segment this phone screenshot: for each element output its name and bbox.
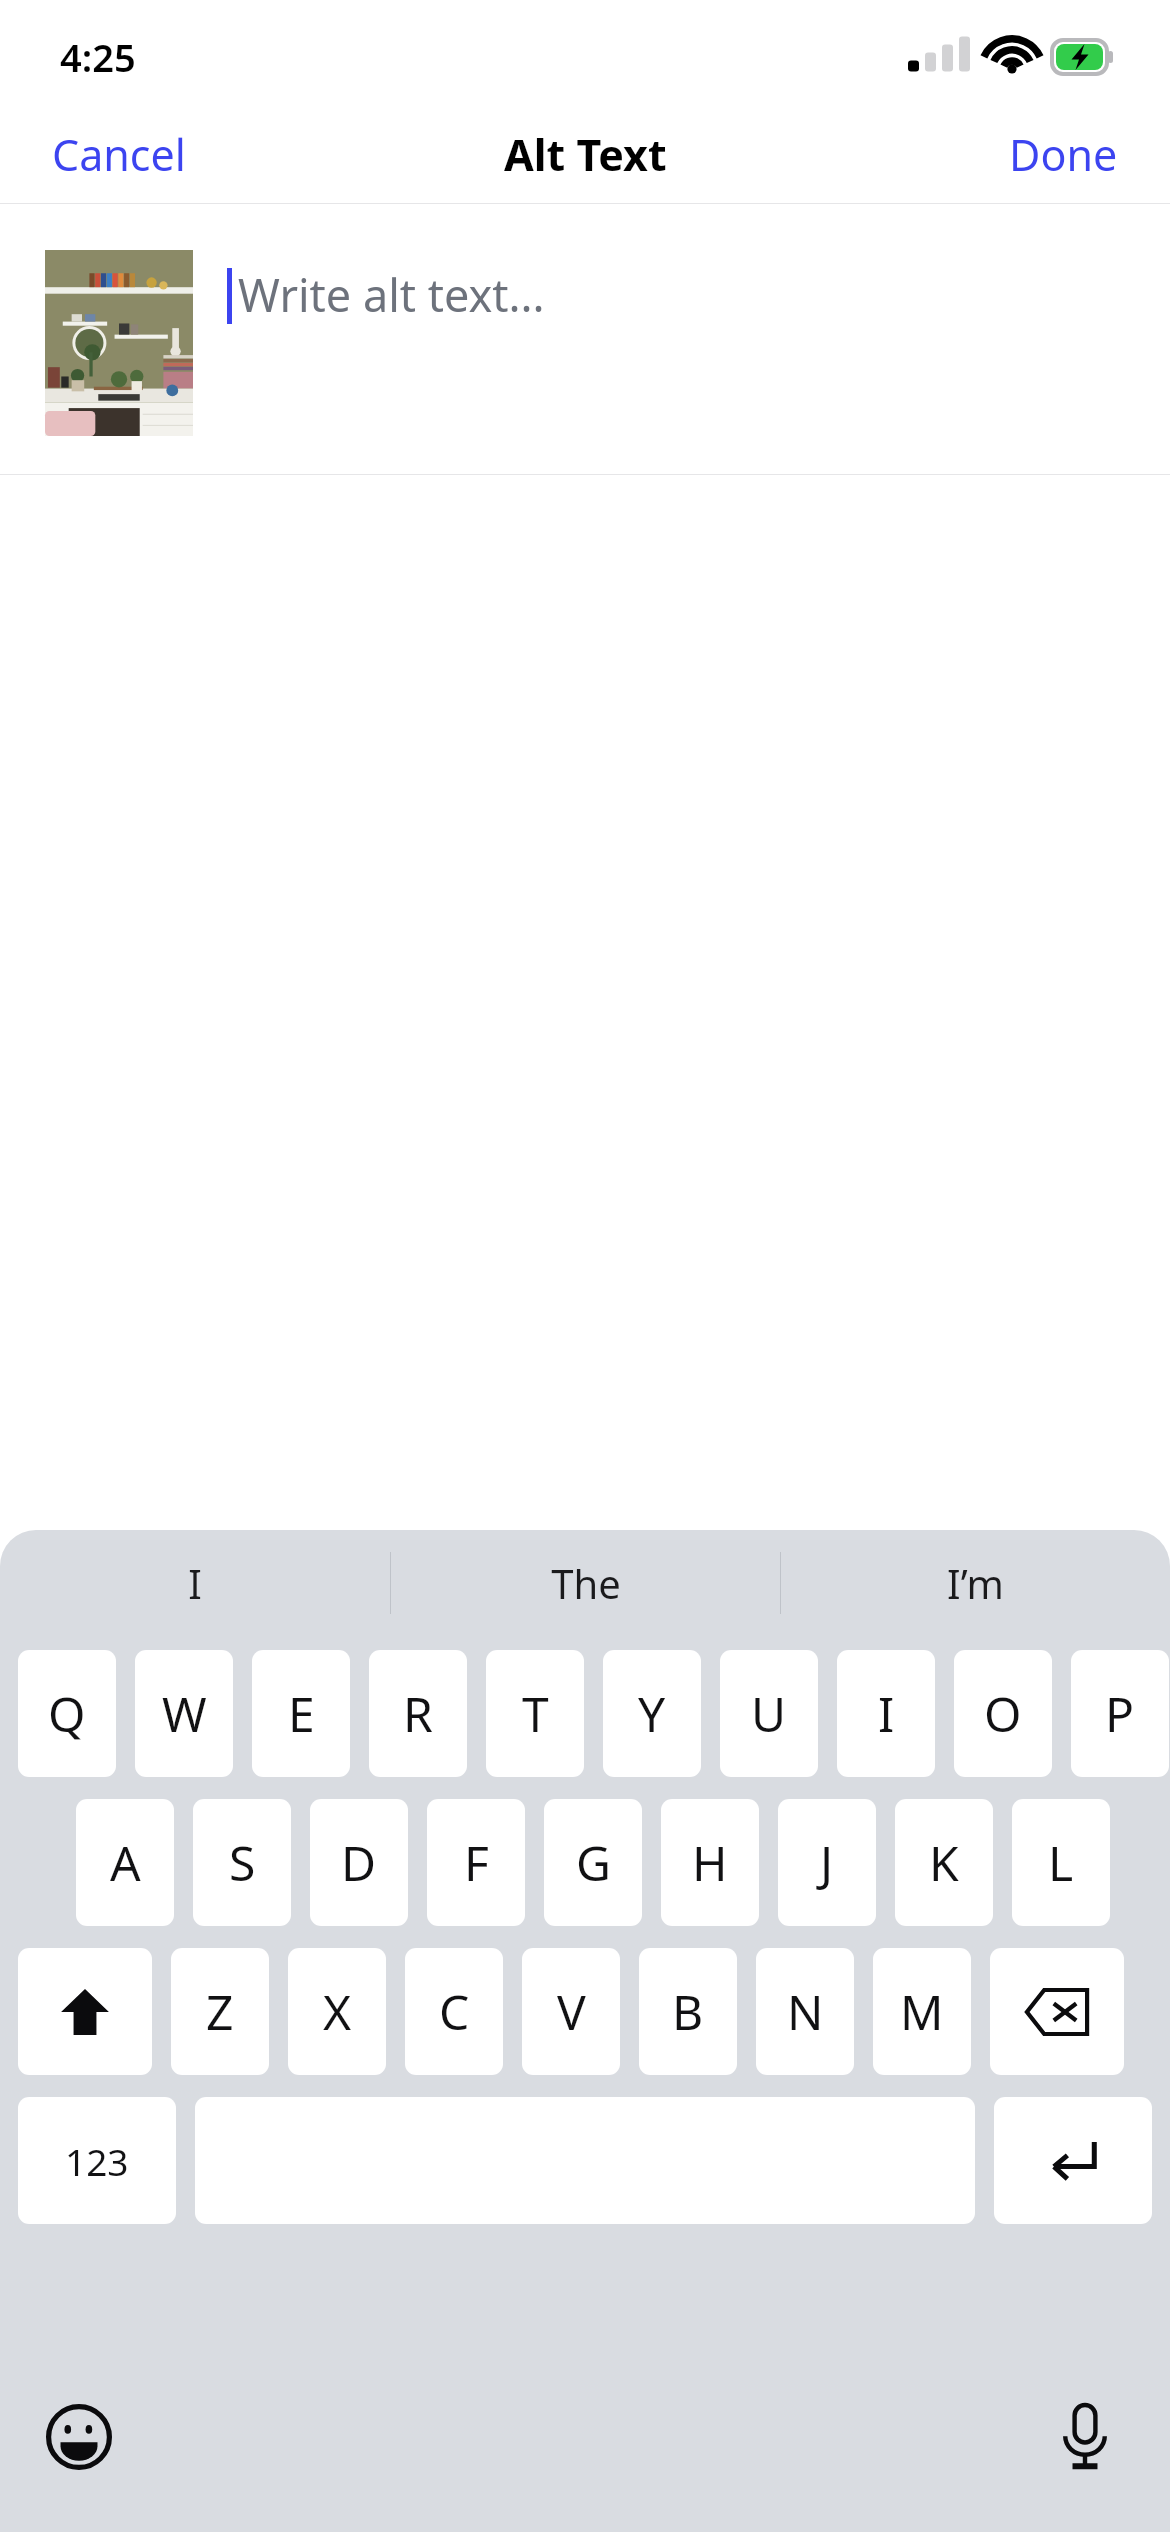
button[interactable]: V: [522, 1948, 620, 2075]
staticText: Cancel: [52, 125, 186, 184]
staticText: M: [900, 1979, 944, 2044]
staticText: P: [1105, 1681, 1135, 1746]
button[interactable]: B: [639, 1948, 737, 2075]
staticText: E: [288, 1681, 315, 1746]
staticText: 4:25: [60, 31, 136, 83]
button[interactable]: T: [486, 1650, 584, 1777]
button[interactable]: N: [756, 1948, 854, 2075]
staticText: K: [929, 1830, 959, 1895]
staticText: O: [984, 1681, 1022, 1746]
button[interactable]: I: [0, 1530, 390, 1636]
button[interactable]: A: [76, 1799, 174, 1926]
staticText: Write alt text...: [238, 264, 545, 325]
button[interactable]: Done: [957, 111, 1170, 198]
button[interactable]: Cancel: [0, 111, 238, 198]
staticText: W: [162, 1681, 207, 1746]
button[interactable]: Return: [994, 2097, 1152, 2224]
staticText: A: [110, 1830, 141, 1895]
button[interactable]: C: [405, 1948, 503, 2075]
button[interactable]: Write alt text...: [0, 204, 1170, 474]
staticText: G: [576, 1830, 611, 1895]
staticText: Alt Text: [504, 125, 667, 184]
button[interactable]: Dictation: [1038, 2390, 1132, 2484]
button[interactable]: J: [778, 1799, 876, 1926]
staticText: J: [820, 1830, 834, 1895]
staticText: T: [522, 1681, 549, 1746]
staticText: L: [1048, 1830, 1074, 1895]
button[interactable]: F: [427, 1799, 525, 1926]
staticText: X: [323, 1979, 352, 2044]
button[interactable]: G: [544, 1799, 642, 1926]
button[interactable]: Y: [603, 1650, 701, 1777]
staticText: C: [439, 1979, 470, 2044]
button[interactable]: K: [895, 1799, 993, 1926]
staticText: Q: [48, 1681, 86, 1746]
button[interactable]: Emoji keyboard: [32, 2390, 126, 2484]
button[interactable]: Backspace: [990, 1948, 1124, 2075]
button[interactable]: X: [288, 1948, 386, 2075]
staticText: S: [229, 1830, 256, 1895]
staticText: Z: [206, 1979, 234, 2044]
button[interactable]: The: [391, 1530, 780, 1636]
staticText: U: [751, 1681, 787, 1746]
button[interactable]: R: [369, 1650, 467, 1777]
button[interactable]: Q: [18, 1650, 116, 1777]
button[interactable]: 123: [18, 2097, 176, 2224]
staticText: R: [403, 1681, 433, 1746]
staticText: N: [787, 1979, 824, 2044]
staticText: D: [341, 1830, 377, 1895]
button[interactable]: P: [1071, 1650, 1169, 1777]
staticText: 123: [65, 2136, 129, 2186]
button[interactable]: D: [310, 1799, 408, 1926]
staticText: I’m: [947, 1556, 1004, 1610]
staticText: Done: [1009, 125, 1118, 184]
button[interactable]: E: [252, 1650, 350, 1777]
button[interactable]: I: [837, 1650, 935, 1777]
button[interactable]: M: [873, 1948, 971, 2075]
button[interactable]: Z: [171, 1948, 269, 2075]
button[interactable]: U: [720, 1650, 818, 1777]
staticText: F: [464, 1830, 489, 1895]
staticText: I: [878, 1681, 895, 1746]
button[interactable]: O: [954, 1650, 1052, 1777]
staticText: The: [551, 1556, 621, 1610]
button[interactable]: H: [661, 1799, 759, 1926]
button[interactable]: W: [135, 1650, 233, 1777]
staticText: H: [692, 1830, 728, 1895]
button[interactable]: L: [1012, 1799, 1110, 1926]
staticText: V: [557, 1979, 586, 2044]
staticText: Y: [638, 1681, 666, 1746]
staticText: I: [188, 1556, 202, 1610]
button[interactable]: I’m: [781, 1530, 1170, 1636]
staticText: B: [672, 1979, 704, 2044]
button[interactable]: S: [193, 1799, 291, 1926]
button[interactable]: Shift: [18, 1948, 152, 2075]
